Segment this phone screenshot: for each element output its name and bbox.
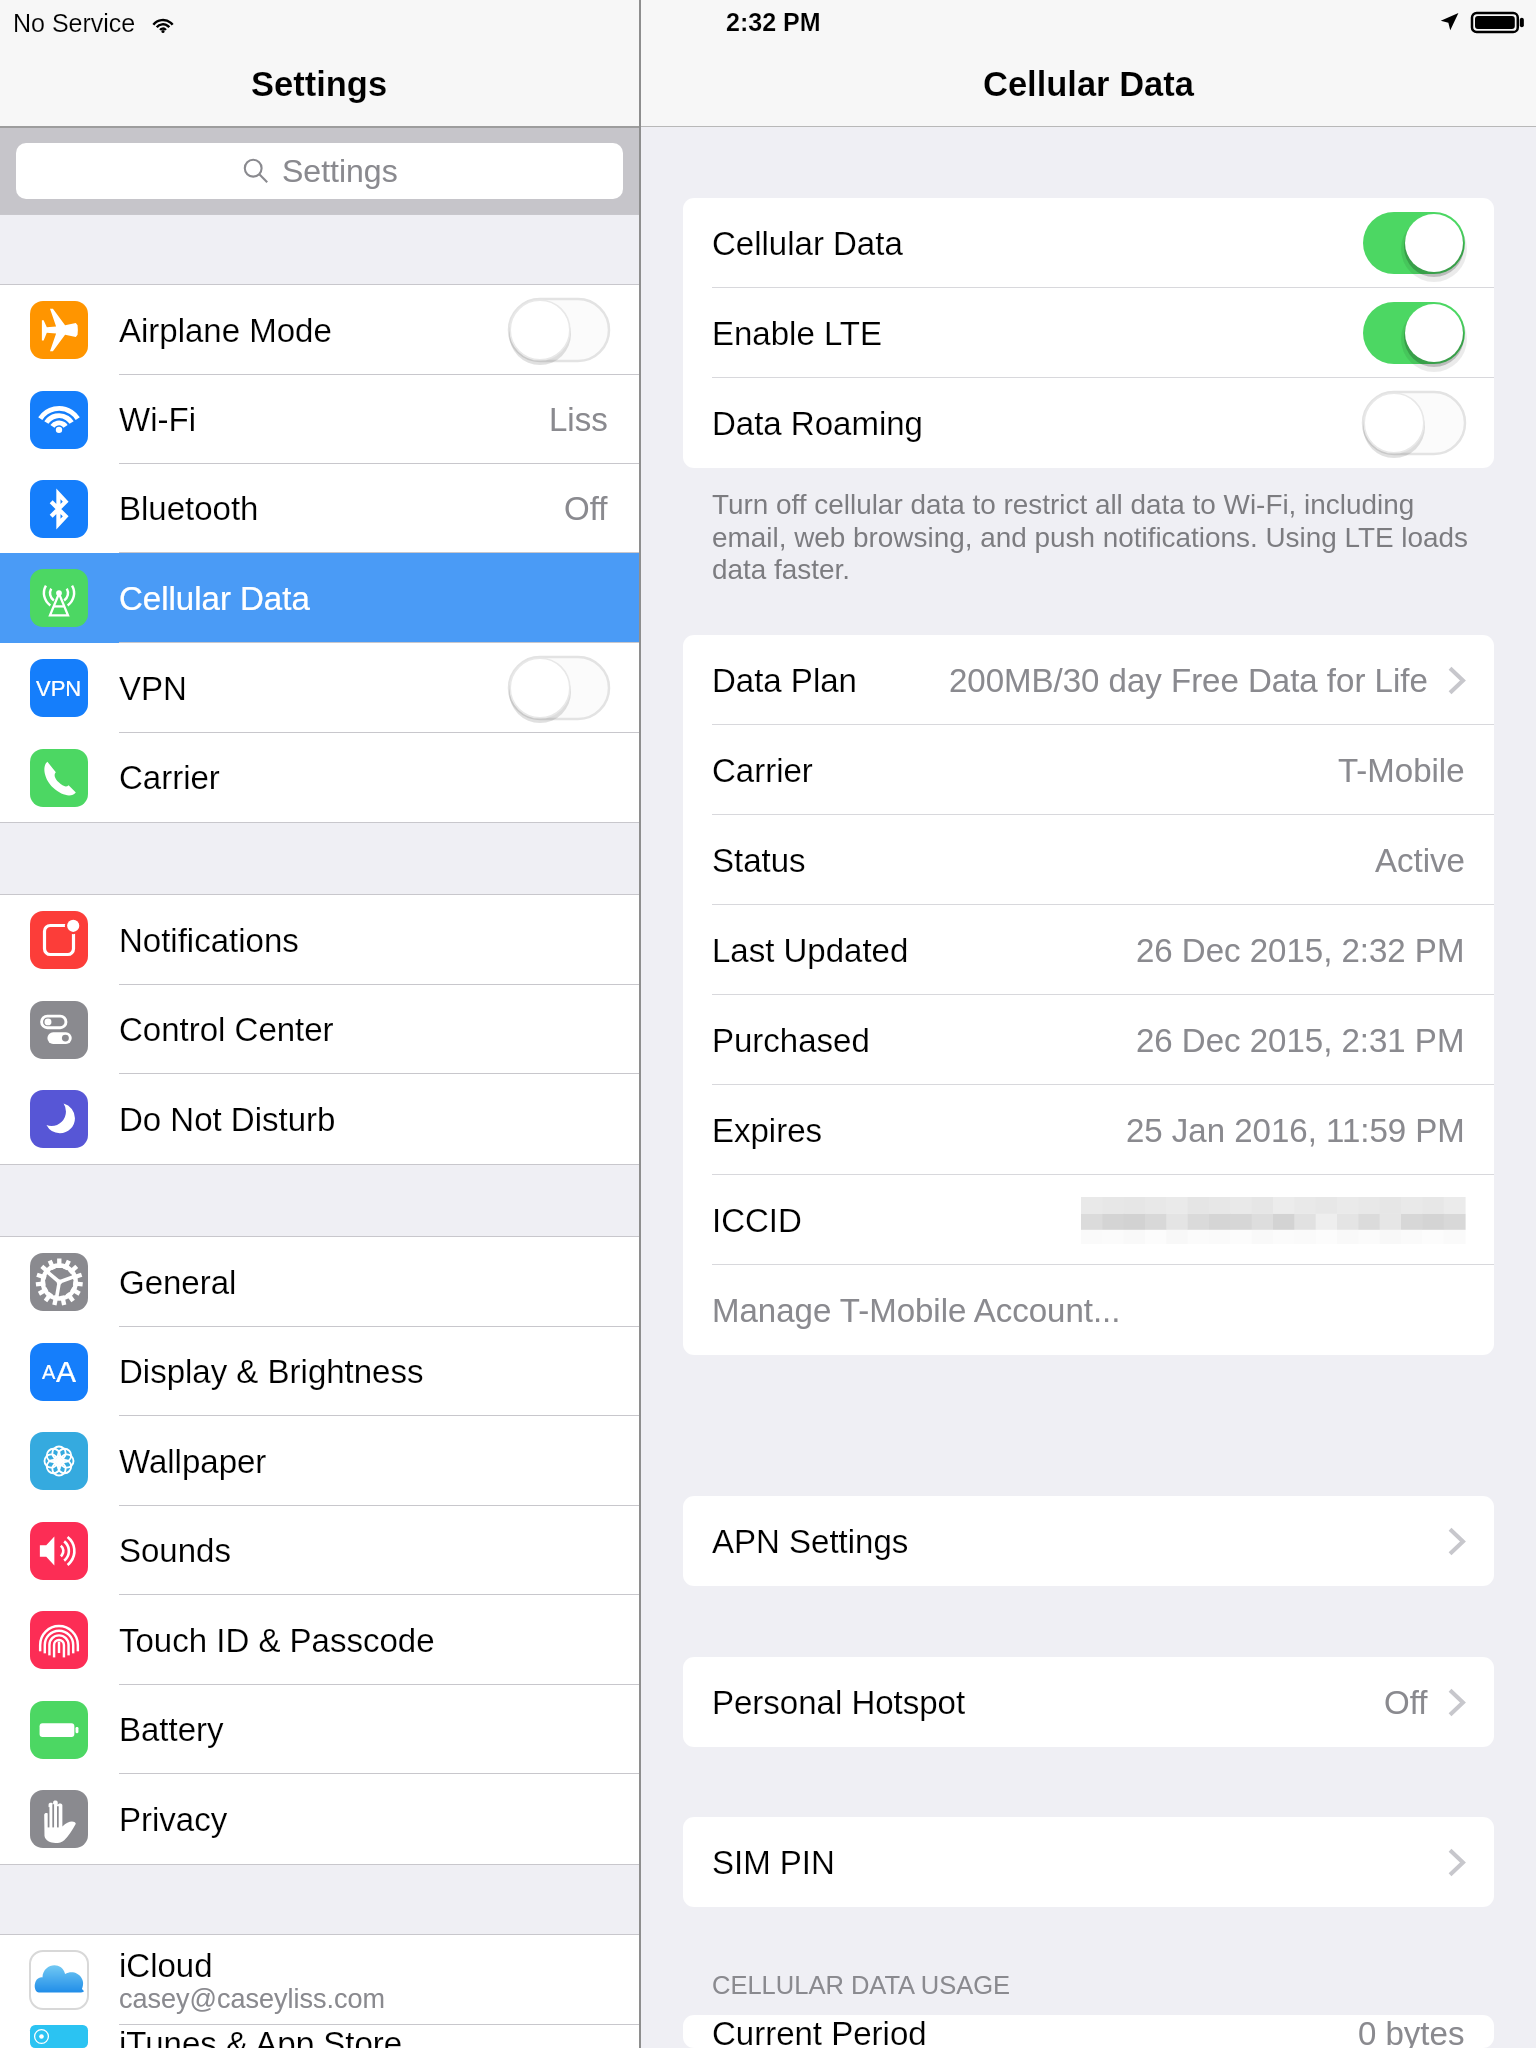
staticText: Manage T-Mobile Account...	[712, 1292, 1121, 1329]
staticText: Airplane Mode	[119, 312, 332, 349]
staticText: T-Mobile	[1338, 752, 1465, 789]
staticText: Settings	[251, 65, 388, 104]
staticText: casey@caseyliss.com	[119, 1984, 385, 2014]
staticText: Wi-Fi	[119, 401, 196, 438]
button[interactable]: ICCID	[683, 1175, 1494, 1265]
staticText: Expires	[712, 1112, 823, 1149]
staticText: Status	[712, 842, 806, 879]
staticText: CELLULAR DATA USAGE	[712, 1971, 1011, 1999]
staticText: Off	[564, 490, 608, 527]
staticText: Data Roaming	[712, 405, 923, 442]
staticText: Last Updated	[712, 932, 909, 969]
staticText: SIM PIN	[712, 1844, 835, 1881]
button[interactable]: Current Period	[683, 2015, 1494, 2048]
staticText: VPN	[119, 670, 187, 707]
staticText: Cellular Data	[119, 580, 310, 617]
staticText: Data Plan	[712, 662, 857, 699]
button[interactable]: Last Updated	[683, 905, 1494, 995]
staticText: 2:32 PM	[726, 8, 821, 36]
staticText: Current Period	[712, 2015, 927, 2048]
staticText: 26 Dec 2015, 2:31 PM	[1136, 1022, 1465, 1059]
staticText: Personal Hotspot	[712, 1684, 966, 1721]
button[interactable]: Sounds	[0, 1506, 639, 1595]
staticText: Bluetooth	[119, 490, 259, 527]
button[interactable]: Data Plan	[683, 635, 1494, 725]
staticText: Do Not Disturb	[119, 1101, 336, 1138]
button[interactable]: Notifications	[0, 895, 639, 985]
staticText: Battery	[119, 1711, 224, 1748]
staticText: A	[56, 1355, 77, 1389]
button[interactable]: Status	[683, 815, 1494, 905]
button[interactable]: Privacy	[0, 1774, 639, 1864]
staticText: No Service	[13, 9, 136, 37]
staticText: APN Settings	[712, 1523, 909, 1560]
staticText: iTunes & App Store	[119, 2025, 403, 2048]
staticText: 200MB/30 day Free Data for Life	[949, 662, 1428, 699]
button[interactable]: Manage T-Mobile Account...	[683, 1265, 1494, 1355]
staticText: Carrier	[119, 759, 220, 796]
staticText: VPN	[36, 676, 82, 701]
staticText: A	[42, 1361, 56, 1383]
button[interactable]: VPN	[0, 643, 639, 733]
button[interactable]: Personal Hotspot	[683, 1657, 1494, 1747]
button[interactable]: Expires	[683, 1085, 1494, 1175]
button[interactable]: Wi-Fi	[0, 375, 639, 464]
button[interactable]: A	[0, 1327, 639, 1416]
staticText: Privacy	[119, 1801, 228, 1838]
button[interactable]: Settings	[16, 143, 623, 199]
button[interactable]: Do Not Disturb	[0, 1074, 639, 1164]
staticText: 25 Jan 2016, 11:59 PM	[1126, 1112, 1465, 1149]
staticText: General	[119, 1264, 237, 1301]
staticText: Display & Brightness	[119, 1353, 424, 1390]
staticText: Off	[1384, 1684, 1428, 1721]
button[interactable]: Toggle Airplane Mode	[509, 299, 609, 361]
staticText: Wallpaper	[119, 1443, 267, 1480]
button[interactable]: Purchased	[683, 995, 1494, 1085]
staticText: 0 bytes	[1358, 2015, 1465, 2048]
staticText: Settings	[282, 153, 398, 189]
staticText: Cellular Data	[712, 225, 903, 262]
button[interactable]: Bluetooth	[0, 464, 639, 553]
button[interactable]: Carrier	[0, 733, 639, 822]
button[interactable]: Toggle Data Roaming	[1363, 392, 1465, 454]
staticText: ICCID	[712, 1202, 802, 1239]
staticText: Purchased	[712, 1022, 870, 1059]
button[interactable]: Toggle VPN	[509, 657, 609, 719]
button[interactable]: Cellular Data	[0, 553, 639, 643]
button[interactable]: Data Roaming	[683, 378, 1494, 468]
button[interactable]: iCloud	[0, 1935, 639, 2025]
staticText: Control Center	[119, 1011, 334, 1048]
button[interactable]: Toggle Enable LTE	[1363, 302, 1465, 364]
button[interactable]: Touch ID & Passcode	[0, 1595, 639, 1685]
staticText: iCloud	[119, 1947, 213, 1984]
button[interactable]: Airplane Mode	[0, 285, 639, 375]
button[interactable]: APN Settings	[683, 1496, 1494, 1586]
button[interactable]: Carrier	[683, 725, 1494, 815]
staticText: Touch ID & Passcode	[119, 1622, 435, 1659]
button[interactable]: SIM PIN	[683, 1817, 1494, 1907]
button[interactable]: Control Center	[0, 985, 639, 1074]
staticText: Turn off cellular data to restrict all d…	[712, 489, 1469, 585]
button[interactable]: Cellular Data	[683, 198, 1494, 288]
staticText: Enable LTE	[712, 315, 882, 352]
staticText: Active	[1375, 842, 1465, 879]
button[interactable]: Toggle Cellular Data	[1363, 212, 1465, 274]
button[interactable]: Wallpaper	[0, 1416, 639, 1506]
staticText: 26 Dec 2015, 2:32 PM	[1136, 932, 1465, 969]
button[interactable]: General	[0, 1237, 639, 1327]
button[interactable]: Battery	[0, 1685, 639, 1774]
staticText: Carrier	[712, 752, 813, 789]
staticText: Cellular Data	[983, 65, 1194, 104]
staticText: Sounds	[119, 1532, 231, 1569]
button[interactable]: Enable LTE	[683, 288, 1494, 378]
staticText: Notifications	[119, 922, 299, 959]
staticText: Liss	[549, 401, 608, 438]
button[interactable]: iTunes & App Store	[0, 2025, 639, 2048]
